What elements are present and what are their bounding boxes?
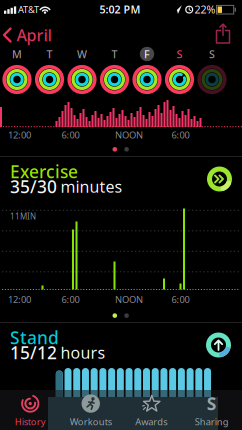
button[interactable]: Day rings xyxy=(99,64,130,95)
staticText: M xyxy=(12,47,22,61)
button[interactable]: Day rings xyxy=(196,64,227,95)
staticText: 15/12 xyxy=(10,341,57,364)
staticText: 6:00 xyxy=(171,293,189,306)
staticText: Stand xyxy=(10,326,59,349)
button[interactable]: Share xyxy=(213,23,233,44)
staticText: T xyxy=(46,47,52,61)
staticText: 11MIN xyxy=(10,211,36,222)
button[interactable]: Awards xyxy=(122,393,180,429)
staticText: Exercise xyxy=(10,160,78,183)
button[interactable]: Day rings xyxy=(164,64,195,95)
button[interactable]: Day rings xyxy=(34,64,65,95)
staticText: 35/30 xyxy=(10,175,57,198)
staticText: 12:00 xyxy=(8,293,31,306)
button[interactable]: April xyxy=(2,24,51,46)
staticText: Workouts xyxy=(70,416,112,428)
button[interactable]: Exercise detail xyxy=(205,165,233,193)
staticText: hours xyxy=(60,342,105,363)
staticText: History xyxy=(15,416,46,428)
button[interactable]: History xyxy=(1,393,59,429)
staticText: 22% xyxy=(194,2,215,16)
staticText: Awards xyxy=(135,416,167,428)
staticText: NOON xyxy=(115,129,143,141)
button[interactable]: Workouts xyxy=(62,393,120,429)
staticText: F xyxy=(144,47,150,61)
staticText: S xyxy=(209,47,215,61)
button[interactable]: Stand detail xyxy=(204,331,232,359)
staticText: AT&T xyxy=(18,3,39,15)
staticText: 5:02 PM xyxy=(99,2,140,16)
staticText: Sharing xyxy=(195,416,229,428)
button[interactable]: Day rings xyxy=(66,64,97,95)
staticText: S xyxy=(207,392,217,415)
staticText: 6:00 xyxy=(171,129,189,141)
button[interactable]: Day rings xyxy=(131,64,162,95)
staticText: minutes xyxy=(60,176,122,197)
staticText: S xyxy=(176,47,182,61)
staticText: 6:00 xyxy=(61,293,79,306)
staticText: W xyxy=(77,47,87,61)
staticText: April xyxy=(16,24,51,46)
staticText: T xyxy=(111,47,117,61)
staticText: 6:00 xyxy=(61,129,79,141)
button[interactable]: Sharing xyxy=(183,393,241,429)
staticText: 12:00 xyxy=(8,129,31,141)
button[interactable]: Day rings xyxy=(1,64,32,95)
staticText: NOON xyxy=(115,293,143,306)
